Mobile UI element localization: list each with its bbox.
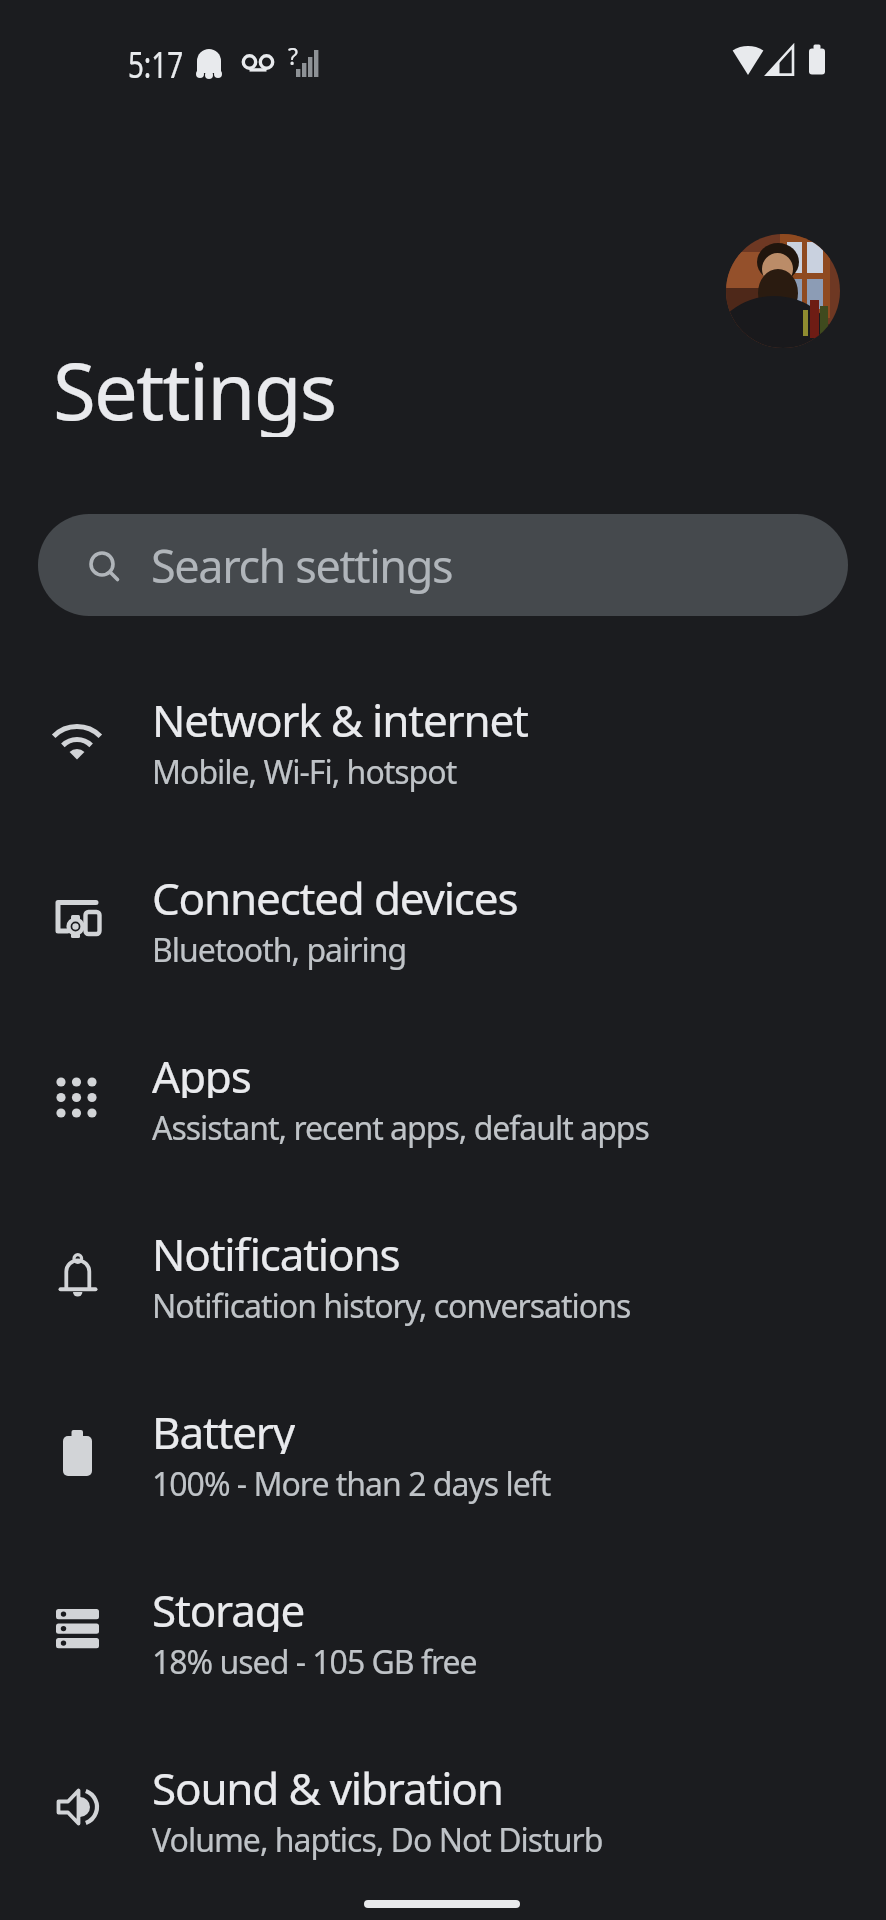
button[interactable]: Search settings [38,514,848,616]
staticText: Network & internet [152,690,528,742]
staticText: 18% used - 105 GB free [152,1640,477,1684]
staticText: Mobile, Wi-Fi, hotspot [152,750,457,794]
staticText: Search settings [151,535,453,596]
staticText: Bluetooth, pairing [152,928,407,972]
staticText: Apps [152,1046,251,1098]
button[interactable]: Sound & vibration [0,1724,886,1902]
staticText: ? [288,40,298,66]
staticText: Storage [152,1580,305,1632]
button[interactable]: Notifications [0,1190,886,1368]
button[interactable]: Network & internet [0,656,886,834]
staticText: 5:17 [128,38,183,78]
button[interactable]: Battery [0,1368,886,1546]
button[interactable]: Storage [0,1546,886,1724]
staticText: Settings [53,337,336,437]
button[interactable]: Apps [0,1012,886,1190]
button[interactable]: Connected devices [0,834,886,1012]
staticText: Battery [152,1402,295,1454]
staticText: Volume, haptics, Do Not Disturb [152,1818,603,1862]
staticText: Connected devices [152,868,518,920]
button[interactable]: ? [726,234,840,348]
staticText: Sound & vibration [152,1758,503,1810]
staticText: 100% - More than 2 days left [152,1462,551,1506]
staticText: Assistant, recent apps, default apps [152,1106,649,1150]
staticText: Notification history, conversations [152,1284,631,1328]
staticText: Notifications [152,1224,400,1276]
